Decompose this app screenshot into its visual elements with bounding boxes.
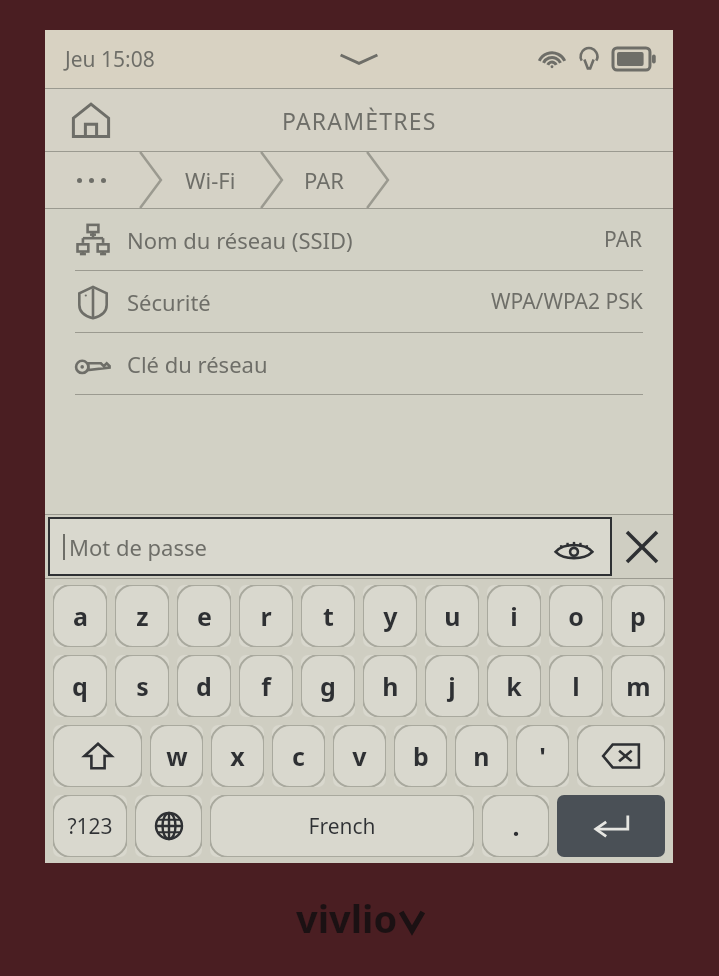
button[interactable]: Close xyxy=(611,515,673,578)
staticText: p xyxy=(630,599,646,633)
button[interactable]: ' xyxy=(516,725,569,787)
staticText: vivlio xyxy=(296,892,398,944)
button[interactable]: French xyxy=(210,795,474,857)
button[interactable]: y xyxy=(363,585,417,647)
button[interactable]: c xyxy=(272,725,325,787)
staticText: x xyxy=(230,739,245,773)
button[interactable]: g xyxy=(301,655,355,717)
button[interactable]: Home xyxy=(67,96,115,144)
button[interactable]: Change language xyxy=(135,795,202,857)
staticText: i xyxy=(510,599,518,633)
staticText: o xyxy=(568,599,584,633)
button[interactable]: x xyxy=(211,725,264,787)
staticText: g xyxy=(320,669,336,703)
button[interactable]: Clé du réseau xyxy=(45,333,673,394)
staticText: t xyxy=(323,599,334,633)
button[interactable]: k xyxy=(487,655,541,717)
button[interactable]: h xyxy=(363,655,417,717)
button[interactable]: b xyxy=(394,725,447,787)
button[interactable]: v xyxy=(333,725,386,787)
button[interactable]: r xyxy=(239,585,293,647)
staticText: s xyxy=(136,669,149,703)
button[interactable]: d xyxy=(177,655,231,717)
staticText: ?123 xyxy=(67,812,113,841)
button[interactable]: Backspace xyxy=(577,725,665,787)
button[interactable]: u xyxy=(425,585,479,647)
button[interactable]: j xyxy=(425,655,479,717)
staticText: a xyxy=(73,599,88,633)
staticText: v xyxy=(352,739,367,773)
staticText: y xyxy=(383,599,398,633)
button[interactable]: w xyxy=(150,725,203,787)
button[interactable]: . xyxy=(482,795,549,857)
staticText: ' xyxy=(539,739,546,773)
staticText: Clé du réseau xyxy=(127,349,268,379)
staticText: u xyxy=(444,599,461,633)
button[interactable]: Sécurité xyxy=(45,271,673,332)
button[interactable]: i xyxy=(487,585,541,647)
other: Show password xyxy=(551,532,597,562)
button[interactable]: m xyxy=(611,655,665,717)
staticText: f xyxy=(261,669,271,703)
staticText: Nom du réseau (SSID) xyxy=(127,225,353,255)
button[interactable]: z xyxy=(115,585,169,647)
button[interactable]: l xyxy=(549,655,603,717)
button[interactable]: Enter xyxy=(557,795,665,857)
staticText: d xyxy=(196,669,212,703)
staticText: WPA/WPA2 PSK xyxy=(491,287,643,316)
staticText: PAR xyxy=(604,225,643,254)
staticText: e xyxy=(197,599,212,633)
button[interactable]: n xyxy=(455,725,508,787)
staticText: Wi-Fi xyxy=(185,165,236,195)
button[interactable]: p xyxy=(611,585,665,647)
button[interactable]: o xyxy=(549,585,603,647)
staticText: k xyxy=(506,669,522,703)
staticText: c xyxy=(292,739,305,773)
staticText: r xyxy=(260,599,272,633)
button[interactable]: a xyxy=(53,585,107,647)
button[interactable]: s xyxy=(115,655,169,717)
staticText: h xyxy=(382,669,399,703)
button[interactable]: More xyxy=(45,152,137,208)
staticText: n xyxy=(473,739,490,773)
button[interactable]: Wi-Fi xyxy=(163,152,258,208)
button[interactable]: e xyxy=(177,585,231,647)
button[interactable]: Shift xyxy=(53,725,142,787)
staticText: l xyxy=(572,669,580,703)
staticText: PARAMÈTRES xyxy=(282,105,437,136)
staticText: . xyxy=(512,809,520,843)
staticText: Mot de passe xyxy=(69,532,207,562)
button[interactable]: t xyxy=(301,585,355,647)
other: Expand xyxy=(336,49,382,69)
staticText: PAR xyxy=(304,165,344,195)
button[interactable]: PAR xyxy=(284,152,364,208)
button[interactable]: Mot de passe xyxy=(49,518,611,575)
staticText: z xyxy=(136,599,149,633)
staticText: m xyxy=(626,669,651,703)
staticText: w xyxy=(166,739,188,773)
button[interactable]: ?123 xyxy=(53,795,127,857)
button[interactable]: f xyxy=(239,655,293,717)
button[interactable]: Nom du réseau (SSID) xyxy=(45,209,673,270)
staticText: Sécurité xyxy=(127,287,211,317)
staticText: Jeu 15:08 xyxy=(65,45,155,74)
staticText: q xyxy=(72,669,88,703)
staticText: French xyxy=(308,812,376,841)
button[interactable]: q xyxy=(53,655,107,717)
staticText: j xyxy=(448,669,456,703)
staticText: b xyxy=(413,739,429,773)
